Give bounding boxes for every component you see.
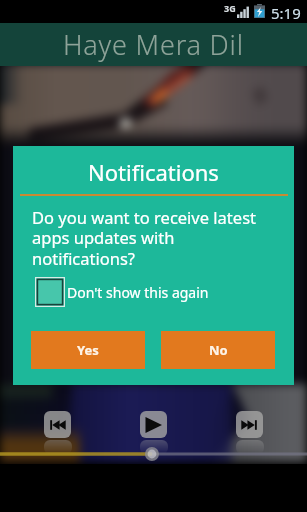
button[interactable]: Next bbox=[236, 411, 263, 438]
staticText: Don't show this again bbox=[67, 283, 209, 302]
staticText: Do you want to receive latest apps updat… bbox=[32, 206, 256, 270]
button[interactable]: No bbox=[161, 331, 275, 369]
button[interactable]: Previous bbox=[44, 411, 71, 438]
staticText: Yes bbox=[77, 341, 99, 359]
button[interactable]: Yes bbox=[31, 331, 145, 369]
button[interactable]: Don't show this again bbox=[35, 275, 209, 309]
staticText: 3G bbox=[224, 2, 236, 14]
staticText: Notifications bbox=[88, 157, 219, 187]
staticText: 5:19 bbox=[271, 3, 301, 23]
staticText: Haye Mera Dil bbox=[63, 26, 244, 63]
button[interactable]: Play bbox=[140, 411, 167, 438]
staticText: No bbox=[209, 341, 228, 359]
